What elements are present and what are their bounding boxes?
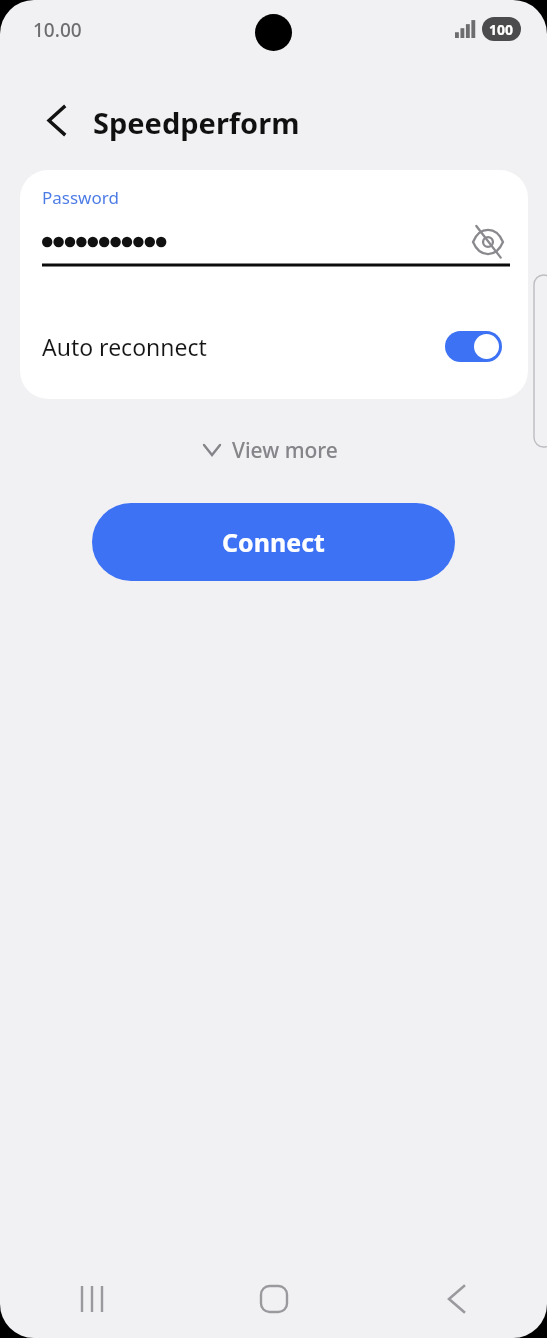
staticText: Password: [42, 186, 119, 209]
staticText: 100: [489, 20, 514, 39]
button[interactable]: Recent apps: [0, 1260, 183, 1338]
staticText: 10.00: [33, 17, 82, 43]
button[interactable]: Auto reconnect toggle: [445, 331, 502, 362]
button[interactable]: Back: [365, 1260, 547, 1338]
button[interactable]: Show password: [466, 221, 510, 263]
button[interactable]: Connect: [92, 503, 455, 581]
button[interactable]: Auto reconnect: [20, 303, 528, 389]
button[interactable]: View more: [196, 430, 346, 470]
button[interactable]: Password: [20, 170, 528, 267]
button[interactable]: Home: [183, 1260, 365, 1338]
staticText: View more: [232, 436, 338, 465]
staticText: Connect: [222, 525, 325, 559]
staticText: Speedperform: [93, 103, 300, 142]
button[interactable]: Back: [34, 98, 78, 142]
staticText: Auto reconnect: [42, 331, 207, 362]
